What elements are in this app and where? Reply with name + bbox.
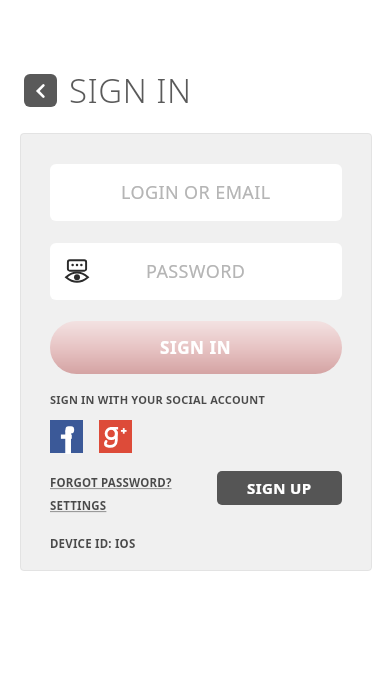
staticText: SIGN IN [69,68,192,113]
button[interactable]: SETTINGS [50,498,107,514]
staticText: SIGN IN WITH YOUR SOCIAL ACCOUNT [50,392,265,407]
staticText: SETTINGS [50,498,107,514]
staticText: FORGOT PASSWORD? [50,475,172,491]
staticText: SIGN IN [160,336,232,359]
button[interactable]: Sign in with Facebook [50,420,83,453]
staticText: SIGN UP [247,478,312,498]
button[interactable]: Sign in with Google Plus [99,420,132,453]
button[interactable]: SIGN UP [217,471,342,505]
staticText: PASSWORD [146,259,246,284]
button[interactable]: Back [24,74,57,107]
button[interactable]: FORGOT PASSWORD? [50,475,172,491]
staticText: LOGIN OR EMAIL [121,180,271,205]
button[interactable]: LOGIN OR EMAIL [50,164,342,221]
button[interactable]: PASSWORD [50,243,342,300]
staticText: DEVICE ID: IOS [50,536,136,552]
button[interactable]: SIGN IN [50,321,342,374]
